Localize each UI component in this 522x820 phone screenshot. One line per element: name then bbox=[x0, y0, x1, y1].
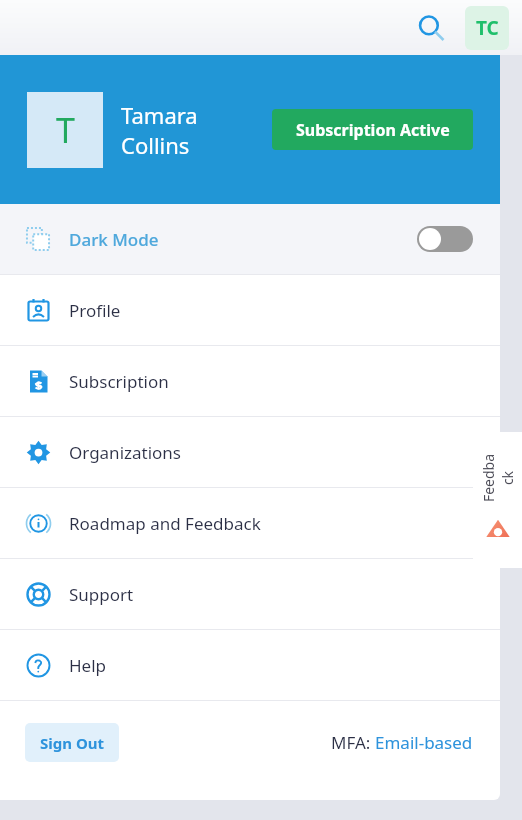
staticText: Organizations bbox=[69, 441, 181, 464]
staticText: Email-based bbox=[375, 731, 473, 754]
button[interactable]: Sign Out bbox=[25, 723, 119, 762]
button[interactable]: Roadmap and Feedback bbox=[0, 488, 500, 558]
staticText: Profile bbox=[69, 299, 121, 322]
button[interactable]: Profile bbox=[0, 275, 500, 345]
staticText: Subscription bbox=[69, 370, 169, 393]
button[interactable]: TC bbox=[465, 6, 509, 50]
button[interactable]: Subscription Active bbox=[272, 109, 473, 150]
staticText: Sign Out bbox=[40, 733, 105, 753]
button[interactable]: Feedback bbox=[473, 432, 522, 568]
button[interactable]: Support bbox=[0, 559, 500, 629]
staticText: Subscription Active bbox=[296, 119, 450, 141]
button[interactable]: Email-based bbox=[375, 731, 473, 754]
staticText: Feedback bbox=[478, 453, 516, 502]
button[interactable]: Dark mode toggle bbox=[417, 226, 473, 252]
button[interactable]: Organizations bbox=[0, 417, 500, 487]
staticText: Support bbox=[69, 583, 134, 606]
button[interactable]: Dark Mode bbox=[0, 204, 500, 274]
staticText: Dark Mode bbox=[69, 228, 159, 251]
button[interactable]: Search bbox=[408, 5, 454, 51]
staticText: Tamara Collins bbox=[121, 100, 198, 160]
staticText: TC bbox=[476, 15, 499, 41]
button[interactable]: Subscription bbox=[0, 346, 500, 416]
button[interactable]: Help bbox=[0, 630, 500, 700]
staticText: Help bbox=[69, 654, 107, 677]
staticText: Roadmap and Feedback bbox=[69, 512, 261, 535]
staticText: T bbox=[56, 107, 75, 153]
staticText: MFA: bbox=[331, 731, 375, 754]
